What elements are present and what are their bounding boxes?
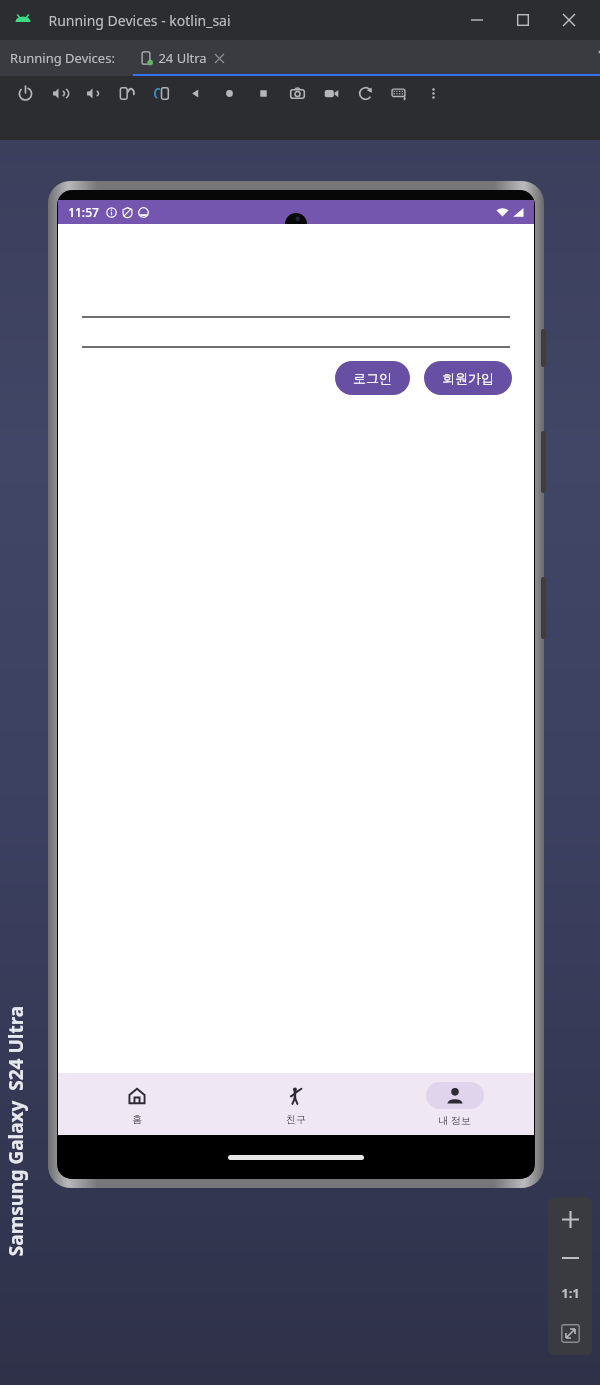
staticText: Running Devices:	[10, 49, 115, 67]
button[interactable]: 1:1	[548, 1275, 592, 1311]
button[interactable]: 친구	[216, 1073, 375, 1135]
staticText: 로그인	[353, 370, 392, 386]
button[interactable]: close	[546, 0, 592, 40]
staticText: 1:1	[561, 1284, 580, 1302]
button[interactable]: 24 Ultra	[133, 40, 600, 76]
button[interactable]: Reset	[348, 76, 382, 110]
button[interactable]: Rotate left	[110, 76, 144, 110]
button[interactable]: More	[416, 76, 450, 110]
staticText: Running Devices - kotlin_sai	[48, 11, 231, 30]
staticText: 회원가입	[442, 370, 494, 386]
button[interactable]: Fit to screen	[548, 1311, 592, 1355]
button[interactable]: 내 정보	[375, 1073, 534, 1135]
button[interactable]: Power	[8, 76, 42, 110]
button[interactable]: 회원가입	[424, 361, 512, 395]
button[interactable]: Keyboard	[382, 76, 416, 110]
button[interactable]: Overview	[246, 76, 280, 110]
staticText: Samsung Galaxy S24 Ultra	[2, 1005, 28, 1256]
staticText: 11:57	[68, 204, 99, 220]
button[interactable]: max	[500, 0, 546, 40]
button[interactable]: Volume up	[42, 76, 76, 110]
staticText: 24 Ultra	[158, 49, 207, 67]
button[interactable]: Home	[212, 76, 246, 110]
staticText: 내 정보	[438, 1113, 471, 1127]
button[interactable]: Volume down	[76, 76, 110, 110]
button[interactable]: 로그인	[335, 361, 410, 395]
button[interactable]: Zoom in	[548, 1197, 592, 1241]
button[interactable]: Back	[178, 76, 212, 110]
staticText: 홈	[132, 1113, 142, 1126]
button[interactable]: Record	[314, 76, 348, 110]
button[interactable]: 홈	[58, 1073, 216, 1135]
button[interactable]: Screenshot	[280, 76, 314, 110]
button[interactable]: min	[454, 0, 500, 40]
button[interactable]: Zoom out	[548, 1241, 592, 1275]
button[interactable]: Rotate right	[144, 76, 178, 110]
staticText: 친구	[286, 1113, 306, 1126]
